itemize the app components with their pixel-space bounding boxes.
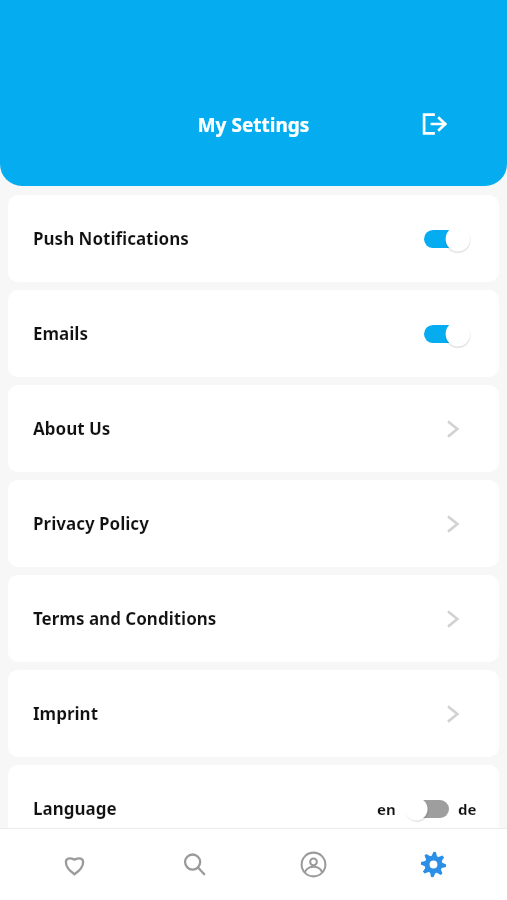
staticText: Privacy Policy	[33, 512, 149, 535]
button[interactable]: Imprint	[8, 670, 499, 757]
button[interactable]: Favorites	[29, 833, 119, 895]
button[interactable]: Log out	[412, 102, 456, 146]
staticText: Language	[33, 797, 117, 820]
staticText: My Settings	[0, 112, 507, 138]
button[interactable]: Emails	[8, 290, 499, 377]
staticText: About Us	[33, 417, 111, 440]
button[interactable]: Terms and Conditions	[8, 575, 499, 662]
button[interactable]: Profile	[268, 833, 358, 895]
staticText: Imprint	[33, 702, 99, 725]
staticText: Terms and Conditions	[33, 607, 217, 630]
button[interactable]: Settings	[388, 833, 478, 895]
staticText: Emails	[33, 322, 88, 345]
button[interactable]: Language	[8, 765, 499, 852]
staticText: Push Notifications	[33, 227, 189, 250]
staticText: en	[377, 799, 396, 819]
button[interactable]: Search	[149, 833, 239, 895]
button[interactable]: Push Notifications	[8, 195, 499, 282]
button[interactable]: Privacy Policy	[8, 480, 499, 567]
staticText: de	[458, 799, 477, 819]
button[interactable]: About Us	[8, 385, 499, 472]
